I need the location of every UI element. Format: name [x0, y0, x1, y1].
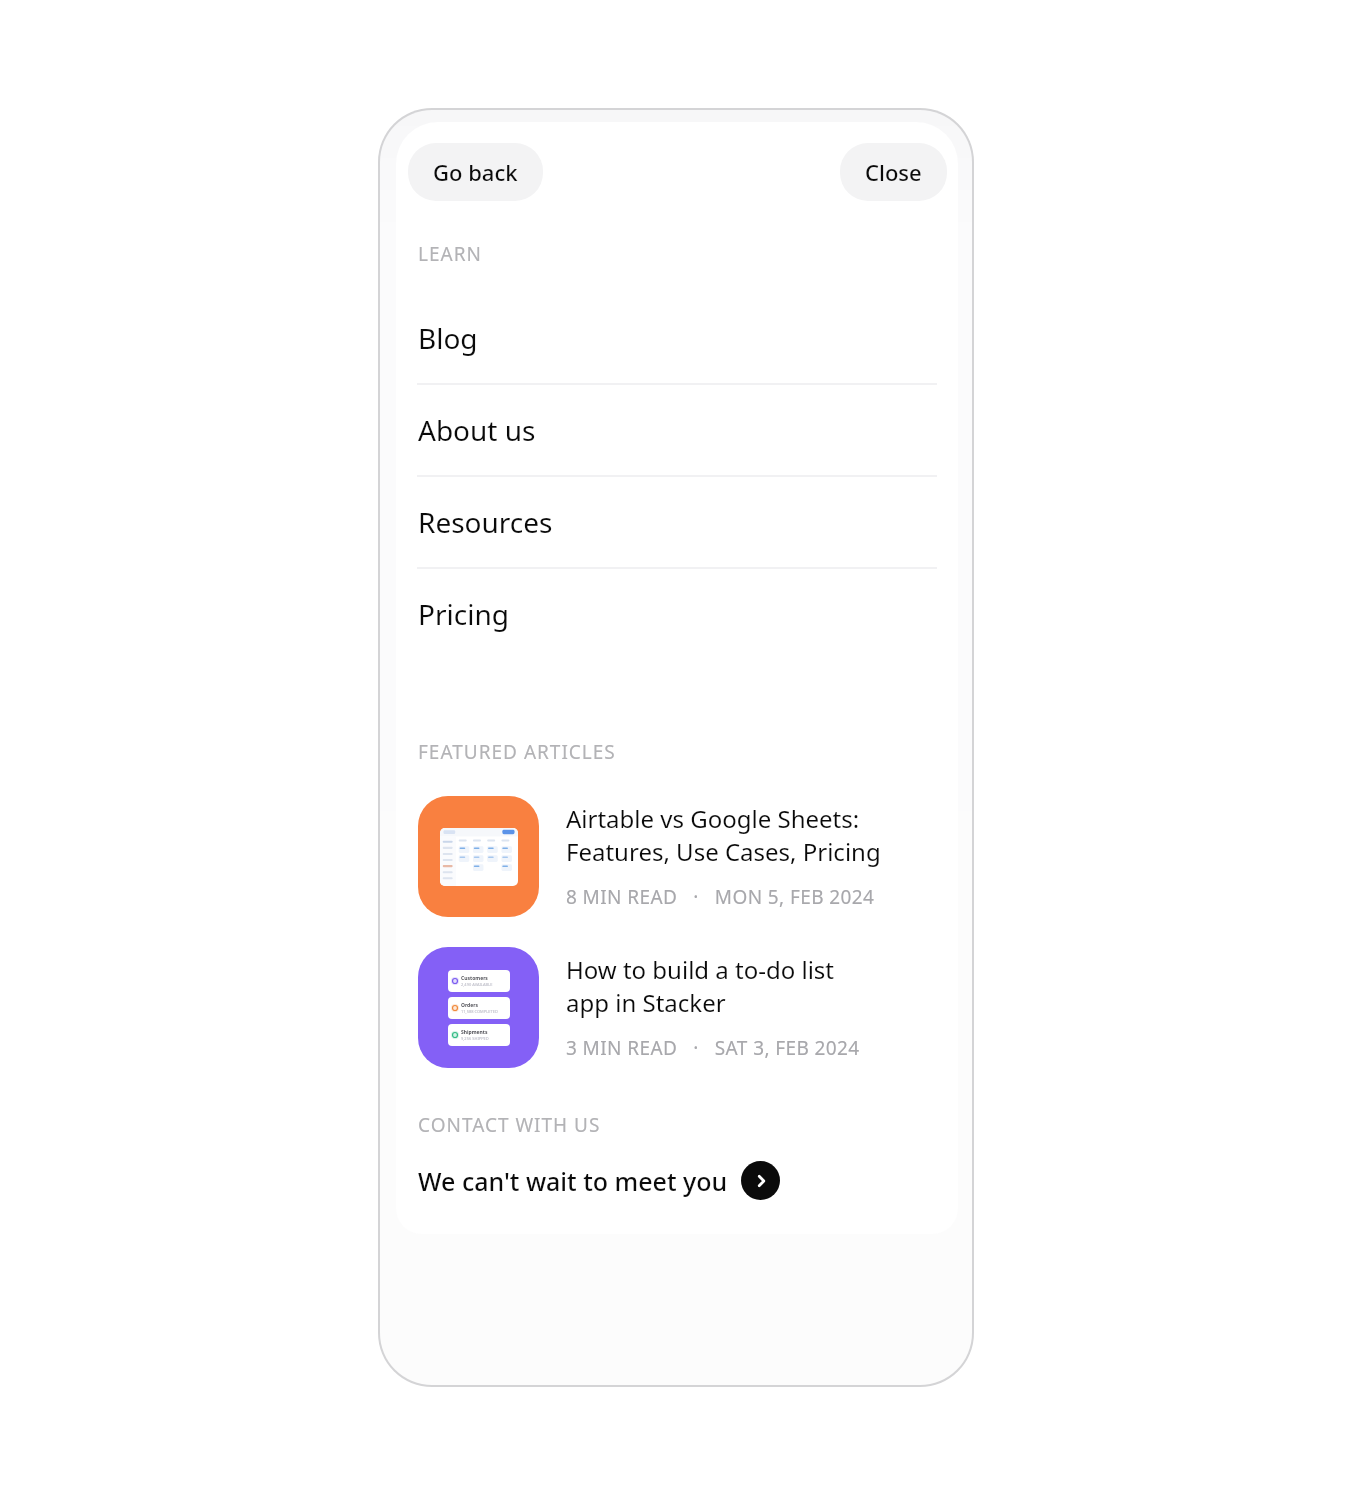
staticText: 2,490 AVAILABLE: [461, 982, 493, 987]
staticText: CONTACT WITH US: [418, 1112, 601, 1138]
button[interactable]: Customers: [396, 943, 958, 1072]
staticText: We can't wait to meet you: [418, 1164, 728, 1198]
staticText: 8 MIN READ · MON 5, FEB 2024: [566, 884, 875, 910]
staticText: Go back: [433, 157, 518, 187]
button[interactable]: Go back: [408, 143, 543, 201]
staticText: Airtable vs Google Sheets:: [566, 802, 860, 835]
button[interactable]: Close: [840, 143, 947, 201]
staticText: Close: [865, 157, 922, 187]
staticText: FEATURED ARTICLES: [418, 739, 616, 765]
staticText: Blog: [418, 319, 478, 357]
staticText: How to build a to-do list: [566, 953, 835, 986]
staticText: Resources: [418, 503, 553, 541]
staticText: LEARN: [418, 241, 482, 267]
staticText: Pricing: [418, 595, 509, 633]
button[interactable]: Resources: [396, 477, 958, 567]
staticText: 3 MIN READ · SAT 3, FEB 2024: [566, 1035, 860, 1061]
staticText: Shipments: [461, 1029, 488, 1036]
staticText: Features, Use Cases, Pricing: [566, 835, 881, 868]
staticText: app in Stacker: [566, 986, 726, 1019]
staticText: About us: [418, 411, 536, 449]
staticText: 9,256 SHIPPED: [461, 1036, 489, 1041]
button[interactable]: Airtable vs Google Sheets:: [396, 792, 958, 921]
button[interactable]: Pricing: [396, 569, 958, 659]
button[interactable]: About us: [396, 385, 958, 475]
staticText: 11,588 COMPLETED: [461, 1009, 498, 1014]
staticText: Orders: [461, 1002, 478, 1009]
button[interactable]: Blog: [396, 293, 958, 383]
staticText: Customers: [461, 975, 488, 982]
other: Contact us: [741, 1161, 780, 1200]
button[interactable]: We can't wait to meet you: [418, 1161, 958, 1200]
